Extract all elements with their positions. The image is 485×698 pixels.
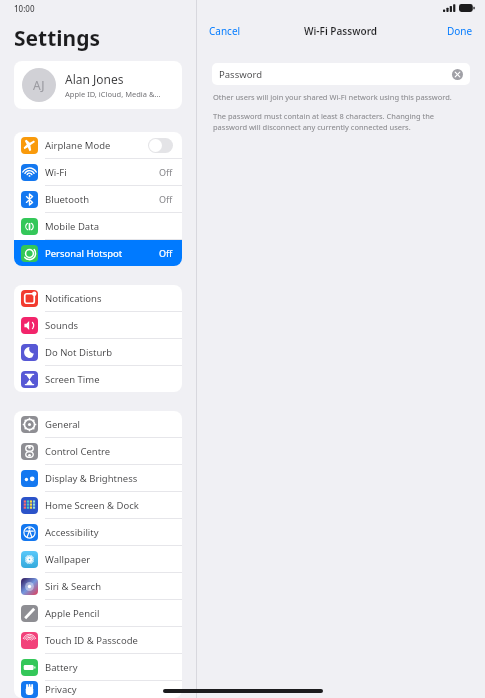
staticText: 10:00 xyxy=(14,3,35,14)
button[interactable]: Privacy xyxy=(14,681,182,698)
button[interactable]: Bluetooth xyxy=(14,186,182,212)
staticText: Home Screen & Dock xyxy=(45,499,173,512)
button[interactable]: Display & Brightness xyxy=(14,465,182,491)
button[interactable]: Battery xyxy=(14,654,182,680)
button[interactable]: AJ xyxy=(14,61,182,109)
button[interactable]: Mobile Data xyxy=(14,213,182,239)
button[interactable]: Personal Hotspot xyxy=(14,240,182,266)
button[interactable]: Accessibility xyxy=(14,519,182,545)
staticText: Wi-Fi xyxy=(45,166,159,179)
staticText: Display & Brightness xyxy=(45,472,173,485)
button[interactable]: Cancel xyxy=(205,21,245,41)
staticText: Password xyxy=(219,68,452,81)
staticText: Personal Hotspot xyxy=(45,247,159,260)
staticText: Off xyxy=(159,166,173,178)
button[interactable]: Airplane Mode xyxy=(14,132,182,158)
staticText: Bluetooth xyxy=(45,193,159,206)
staticText: Battery xyxy=(45,661,173,674)
staticText: Cancel xyxy=(209,24,241,38)
staticText: Do Not Disturb xyxy=(45,346,173,359)
button[interactable]: Password xyxy=(212,63,470,85)
button[interactable]: Notifications xyxy=(14,285,182,311)
button[interactable]: Airplane Mode toggle xyxy=(148,138,173,153)
staticText: Done xyxy=(447,24,473,38)
staticText: Sounds xyxy=(45,319,173,332)
staticText: Touch ID & Passcode xyxy=(45,634,173,647)
button[interactable]: General xyxy=(14,411,182,437)
staticText: General xyxy=(45,418,173,431)
staticText: Apple Pencil xyxy=(45,607,173,620)
staticText: Wi-Fi Password xyxy=(304,24,378,38)
staticText: Notifications xyxy=(45,292,173,305)
staticText: AJ xyxy=(33,77,45,93)
button[interactable]: Control Centre xyxy=(14,438,182,464)
staticText: Off xyxy=(159,247,173,259)
button[interactable]: Touch ID & Passcode xyxy=(14,627,182,653)
button[interactable]: Siri & Search xyxy=(14,573,182,599)
staticText: Apple ID, iCloud, Media &… xyxy=(65,89,161,99)
staticText: Screen Time xyxy=(45,373,173,386)
staticText: Airplane Mode xyxy=(45,139,148,152)
staticText: Wallpaper xyxy=(45,553,173,566)
staticText: Off xyxy=(159,193,173,205)
button[interactable]: Wi-Fi xyxy=(14,159,182,185)
button[interactable]: Apple Pencil xyxy=(14,600,182,626)
staticText: The password must contain at least 8 cha… xyxy=(213,111,438,132)
staticText: Mobile Data xyxy=(45,220,173,233)
button[interactable]: Sounds xyxy=(14,312,182,338)
staticText: Alan Jones xyxy=(65,71,124,87)
staticText: Accessibility xyxy=(45,526,173,539)
staticText: Settings xyxy=(14,24,101,53)
staticText: Siri & Search xyxy=(45,580,173,593)
button[interactable]: Clear text xyxy=(452,69,463,80)
staticText: Control Centre xyxy=(45,445,173,458)
button[interactable]: Done xyxy=(443,21,477,41)
staticText: Other users will join your shared Wi-Fi … xyxy=(213,92,452,102)
button[interactable]: Screen Time xyxy=(14,366,182,392)
button[interactable]: Do Not Disturb xyxy=(14,339,182,365)
staticText: Privacy xyxy=(45,683,173,696)
button[interactable]: Wallpaper xyxy=(14,546,182,572)
button[interactable]: Home Screen & Dock xyxy=(14,492,182,518)
